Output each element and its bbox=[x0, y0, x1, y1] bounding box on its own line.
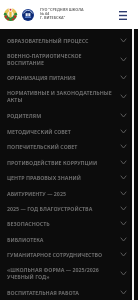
button[interactable]: 2025 — ГОД БЛАГОУСТРОЙСТВА bbox=[0, 201, 138, 216]
staticText: ВОЕННО-ПАТРИОТИЧЕСКОЕ ВОСПИТАНИЕ bbox=[7, 52, 116, 67]
button[interactable]: МЕТОДИЧЕСКИЙ СОВЕТ bbox=[0, 123, 138, 139]
staticText: НОРМАТИВНЫЕ И ЗАКОНОДАТЕЛЬНЫЕ АКТЫ bbox=[7, 89, 116, 104]
staticText: АБИТУРИЕНТУ — 2025 bbox=[7, 190, 66, 197]
staticText: ОРГАНИЗАЦИЯ ПИТАНИЯ bbox=[7, 74, 76, 81]
button[interactable]: ВОЕННО-ПАТРИОТИЧЕСКОЕ ВОСПИТАНИЕ bbox=[0, 48, 138, 70]
staticText: «ШКОЛЬНАЯ ФОРМА — 2025/2026 УЧЕБНЫЙ ГОД» bbox=[7, 266, 116, 281]
staticText: ПРОТИВОДЕЙСТВИЕ КОРРУПЦИИ bbox=[7, 159, 98, 166]
staticText: ГУМАНИТАРНОЕ СОТРУДНИЧЕСТВО bbox=[7, 251, 103, 258]
staticText: ПОПЕЧИТЕЛЬСКИЙ СОВЕТ bbox=[7, 143, 78, 150]
button[interactable]: ОРГАНИЗАЦИЯ ПИТАНИЯ bbox=[0, 70, 138, 85]
button[interactable]: ОБРАЗОВАТЕЛЬНЫЙ ПРОЦЕСС bbox=[0, 32, 138, 48]
staticText: БИБЛИОТЕКА bbox=[7, 236, 44, 243]
button[interactable]: АБИТУРИЕНТУ — 2025 bbox=[0, 185, 138, 201]
button[interactable]: ГУМАНИТАРНОЕ СОТРУДНИЧЕСТВО bbox=[0, 247, 138, 262]
staticText: БЕЗОПАСНОСТЬ bbox=[7, 220, 50, 227]
staticText: ВОСПИТАТЕЛЬНАЯ РАБОТА bbox=[7, 289, 79, 296]
button[interactable]: РОДИТЕЛЯМ bbox=[0, 108, 138, 123]
button[interactable]: БИБЛИОТЕКА bbox=[0, 231, 138, 247]
staticText: 2025 — ГОД БЛАГОУСТРОЙСТВА bbox=[7, 205, 93, 212]
button[interactable]: ПОПЕЧИТЕЛЬСКИЙ СОВЕТ bbox=[0, 139, 138, 154]
staticText: МЕТОДИЧЕСКИЙ СОВЕТ bbox=[7, 128, 71, 135]
button[interactable]: БЕЗОПАСНОСТЬ bbox=[0, 216, 138, 231]
button[interactable]: ВОСПИТАТЕЛЬНАЯ РАБОТА bbox=[0, 285, 138, 300]
staticText: РОДИТЕЛЯМ bbox=[7, 112, 42, 119]
button[interactable]: ЦЕНТР ПРАВОВЫХ ЗНАНИЙ bbox=[0, 170, 138, 185]
staticText: ГУО "СРЕДНЯЯ ШКОЛА № 44 Г. ВИТЕБСКА" bbox=[40, 7, 84, 21]
staticText: ЦЕНТР ПРАВОВЫХ ЗНАНИЙ bbox=[7, 174, 81, 181]
button[interactable]: «ШКОЛЬНАЯ ФОРМА — 2025/2026 УЧЕБНЫЙ ГОД» bbox=[0, 262, 138, 285]
button[interactable]: НОРМАТИВНЫЕ И ЗАКОНОДАТЕЛЬНЫЕ АКТЫ bbox=[0, 85, 138, 108]
button[interactable]: Open menu bbox=[114, 6, 132, 24]
button[interactable]: ПРОТИВОДЕЙСТВИЕ КОРРУПЦИИ bbox=[0, 154, 138, 170]
staticText: ОБРАЗОВАТЕЛЬНЫЙ ПРОЦЕСС bbox=[7, 37, 89, 44]
